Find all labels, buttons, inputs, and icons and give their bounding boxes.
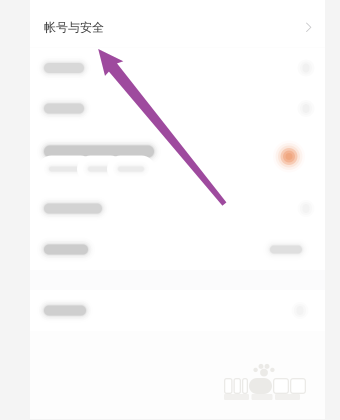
button[interactable] bbox=[30, 229, 325, 270]
button[interactable] bbox=[30, 188, 325, 229]
staticText: 帐号与安全 bbox=[44, 20, 104, 35]
button[interactable] bbox=[30, 290, 325, 331]
button[interactable] bbox=[30, 88, 325, 129]
button[interactable]: 帐号与安全 bbox=[30, 8, 325, 47]
button[interactable] bbox=[30, 48, 325, 88]
button[interactable] bbox=[30, 129, 325, 188]
